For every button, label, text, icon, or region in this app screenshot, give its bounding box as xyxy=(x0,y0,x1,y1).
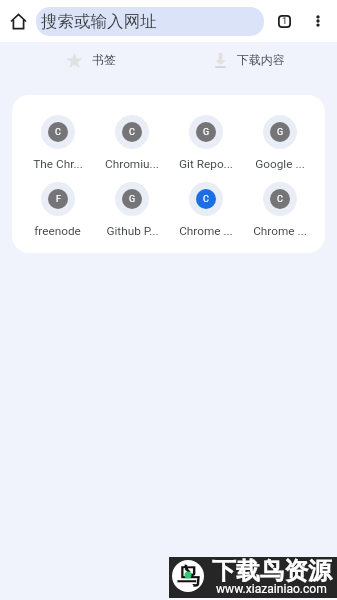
button[interactable]: F xyxy=(20,182,95,238)
button[interactable]: C xyxy=(95,115,169,171)
button[interactable]: 书签 xyxy=(58,49,124,72)
staticText: Github P... xyxy=(106,224,159,238)
staticText: 搜索或输入网址 xyxy=(41,11,157,32)
button[interactable]: 下载内容 xyxy=(207,49,293,72)
button[interactable]: Tabs: 1 xyxy=(269,3,299,39)
staticText: F xyxy=(56,194,61,205)
button[interactable]: More options xyxy=(299,3,337,39)
button[interactable]: Home xyxy=(0,3,36,39)
button[interactable]: G xyxy=(243,115,317,171)
button[interactable]: G xyxy=(95,182,169,238)
staticText: 书签 xyxy=(92,53,116,68)
staticText: 下载内容 xyxy=(237,53,285,68)
staticText: C xyxy=(277,194,283,205)
button[interactable]: C xyxy=(20,115,95,171)
staticText: G xyxy=(203,127,210,138)
staticText: The Chr... xyxy=(33,157,83,171)
staticText: G xyxy=(129,194,136,205)
staticText: www.xiazainiao.com xyxy=(216,582,327,596)
staticText: 1 xyxy=(282,16,288,27)
staticText: Chromiu... xyxy=(105,157,159,171)
staticText: Chrome ... xyxy=(179,224,233,238)
staticText: Git Repo... xyxy=(179,157,233,171)
staticText: 下载鸟资源 xyxy=(212,556,332,586)
staticText: C xyxy=(203,194,209,205)
staticText: freenode xyxy=(34,224,81,238)
button[interactable]: C xyxy=(243,182,317,238)
staticText: C xyxy=(55,127,61,138)
staticText: Google ... xyxy=(255,157,305,171)
staticText: Chrome ... xyxy=(253,224,307,238)
button[interactable]: G xyxy=(169,115,243,171)
staticText: G xyxy=(277,127,284,138)
staticText: 鸟 xyxy=(177,562,200,591)
button[interactable]: C xyxy=(169,182,243,238)
button[interactable]: 搜索或输入网址 xyxy=(36,7,264,36)
staticText: C xyxy=(129,127,135,138)
